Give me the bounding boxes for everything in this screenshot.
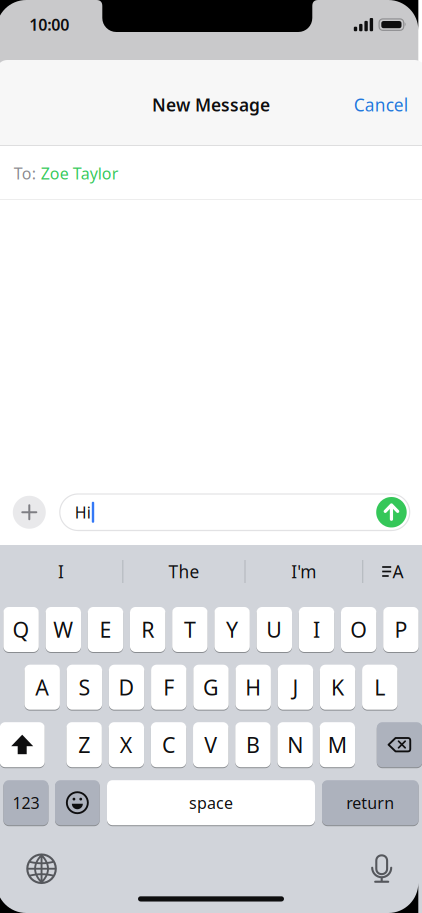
button[interactable]: F — [151, 664, 187, 710]
button[interactable]: M — [320, 722, 355, 768]
staticText: B — [246, 730, 260, 759]
staticText: I — [58, 560, 64, 583]
button[interactable]: Hi — [60, 494, 410, 530]
staticText: C — [162, 730, 175, 759]
staticText: I'm — [291, 560, 316, 583]
staticText: A — [392, 560, 403, 583]
staticText: New Message — [152, 93, 270, 116]
button[interactable]: V — [193, 722, 228, 768]
button[interactable]: I'm — [246, 545, 362, 598]
staticText: W — [53, 615, 73, 644]
staticText: N — [287, 730, 303, 759]
button[interactable]: B — [235, 722, 271, 768]
button[interactable]: return — [322, 780, 419, 826]
staticText: S — [78, 673, 90, 701]
staticText: Z — [78, 730, 90, 759]
button[interactable]: To: — [0, 146, 422, 200]
button[interactable]: Send — [376, 497, 407, 527]
button[interactable]: Predictions — [363, 545, 422, 598]
staticText: D — [119, 673, 135, 701]
button[interactable]: O — [341, 606, 376, 652]
staticText: J — [292, 673, 298, 701]
staticText: H — [245, 673, 261, 701]
button[interactable]: I — [299, 606, 334, 652]
staticText: F — [163, 673, 174, 701]
button[interactable]: H — [235, 664, 271, 710]
button[interactable]: K — [320, 664, 355, 710]
staticText: space — [189, 792, 233, 813]
button[interactable]: Y — [214, 606, 250, 652]
button[interactable]: C — [151, 722, 186, 768]
button[interactable]: N — [277, 722, 313, 768]
staticText: L — [374, 673, 385, 701]
button[interactable]: X — [109, 722, 144, 768]
staticText: R — [141, 615, 154, 644]
button[interactable]: T — [172, 606, 208, 652]
button[interactable]: Delete — [377, 722, 422, 768]
button[interactable]: Shift — [0, 722, 45, 768]
staticText: return — [346, 792, 394, 813]
button[interactable]: The — [123, 545, 244, 598]
button[interactable]: Apps — [13, 496, 46, 529]
staticText: To: — [14, 163, 36, 184]
staticText: M — [328, 730, 347, 759]
button[interactable]: D — [109, 664, 144, 710]
staticText: T — [184, 615, 196, 644]
staticText: K — [331, 673, 344, 701]
staticText: Q — [13, 615, 30, 644]
staticText: X — [120, 730, 133, 759]
button[interactable]: S — [67, 664, 102, 710]
button[interactable]: Q — [3, 606, 39, 652]
button[interactable]: I — [0, 545, 122, 598]
staticText: O — [350, 615, 367, 644]
button[interactable]: J — [278, 664, 313, 710]
staticText: Y — [226, 615, 238, 644]
button[interactable]: P — [383, 606, 419, 652]
button[interactable]: R — [130, 606, 165, 652]
button[interactable]: E — [88, 606, 123, 652]
button[interactable]: Numbers — [3, 780, 48, 826]
button[interactable]: Next keyboard — [27, 854, 56, 883]
staticText: Hi — [75, 502, 91, 523]
staticText: The — [168, 560, 199, 583]
staticText: A — [35, 673, 49, 701]
staticText: E — [99, 615, 111, 644]
button[interactable]: G — [193, 664, 229, 710]
button[interactable]: A — [24, 664, 60, 710]
button[interactable]: Z — [66, 722, 102, 768]
staticText: Cancel — [354, 93, 408, 116]
button[interactable]: W — [46, 606, 81, 652]
button[interactable]: Emoji — [55, 780, 100, 826]
staticText: I — [313, 615, 320, 644]
staticText: V — [204, 730, 217, 759]
button[interactable]: space — [107, 780, 315, 826]
staticText: U — [266, 615, 282, 644]
button[interactable]: U — [257, 606, 292, 652]
button[interactable]: L — [362, 664, 398, 710]
staticText: G — [203, 673, 219, 701]
staticText: 123 — [12, 792, 39, 813]
staticText: P — [394, 615, 407, 644]
staticText: Zoe Taylor — [41, 163, 119, 184]
button[interactable]: Cancel — [354, 93, 422, 116]
staticText: 10:00 — [29, 14, 69, 35]
button[interactable]: Dictation — [370, 855, 394, 882]
